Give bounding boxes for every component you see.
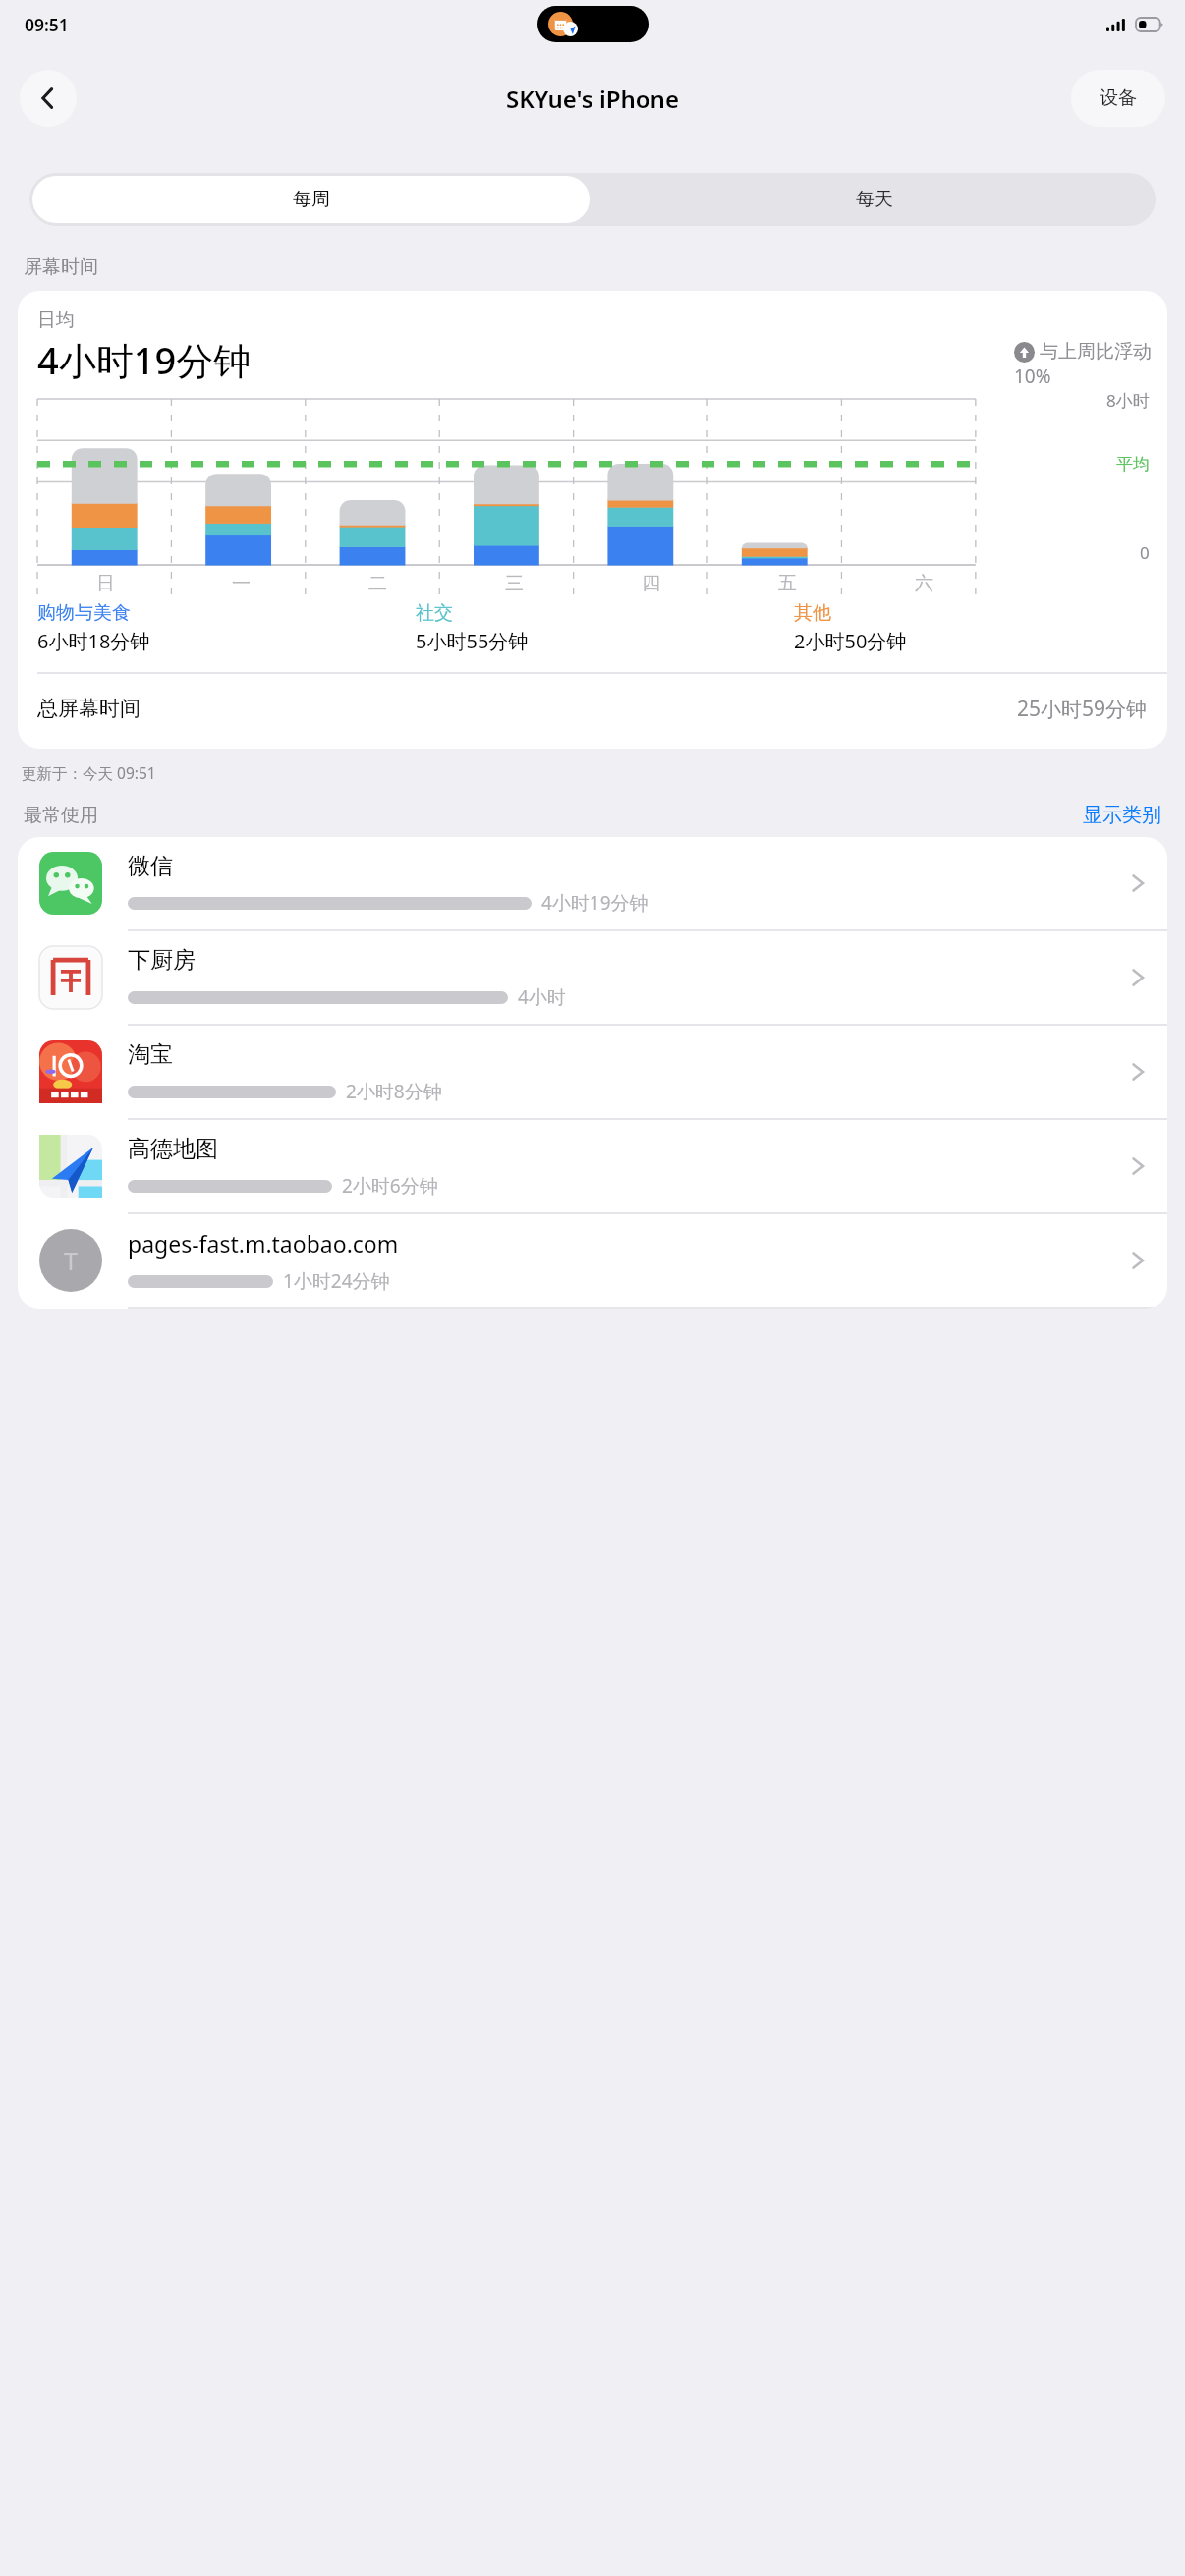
staticText: 屏幕时间: [24, 255, 98, 279]
staticText: 淘宝: [128, 1040, 173, 1069]
staticText: 每天: [856, 188, 893, 211]
staticText: 2小时50分钟: [794, 628, 907, 654]
staticText: 四: [642, 572, 660, 595]
button[interactable]: 每天: [592, 173, 1156, 226]
staticText: 4小时: [518, 984, 566, 1010]
staticText: 与上周比浮动: [1040, 340, 1152, 364]
staticText: 设备: [1100, 86, 1137, 110]
staticText: pages-fast.m.taobao.com: [128, 1228, 399, 1259]
staticText: 5小时55分钟: [416, 628, 529, 654]
other: Open 下厨房: [1128, 968, 1148, 987]
other: Open 淘宝: [1128, 1062, 1148, 1082]
staticText: 每周: [293, 188, 330, 211]
other: Open 微信: [1128, 873, 1148, 893]
button[interactable]: Back: [20, 70, 77, 127]
staticText: 总屏幕时间: [37, 696, 141, 721]
staticText: 日: [96, 572, 115, 595]
staticText: 显示类别: [1083, 803, 1161, 827]
other: Open 高德地图: [1128, 1156, 1148, 1176]
staticText: 4小时19分钟: [37, 334, 252, 385]
button[interactable]: 显示类别: [1083, 803, 1161, 827]
staticText: 09:51: [25, 13, 69, 36]
staticText: 8小时: [1106, 389, 1150, 412]
staticText: 更新于：今天 09:51: [22, 762, 156, 783]
staticText: 其他: [794, 601, 831, 625]
staticText: 二: [368, 572, 387, 595]
staticText: 高德地图: [128, 1135, 218, 1163]
staticText: 0: [1140, 541, 1150, 564]
staticText: 2小时8分钟: [346, 1079, 442, 1104]
button[interactable]: 高德地图: [18, 1120, 1167, 1212]
staticText: 4小时19分钟: [541, 890, 649, 916]
staticText: 微信: [128, 852, 173, 880]
button[interactable]: 设备: [1071, 70, 1165, 127]
staticText: SKYue's iPhone: [506, 83, 679, 115]
staticText: 平均: [1116, 454, 1150, 475]
staticText: 25小时59分钟: [1017, 695, 1148, 723]
button[interactable]: 下厨房: [18, 931, 1167, 1024]
staticText: 10%: [1014, 364, 1051, 389]
staticText: 2小时6分钟: [342, 1173, 438, 1199]
staticText: 三: [505, 572, 524, 595]
staticText: 社交: [416, 601, 453, 625]
staticText: 下厨房: [128, 946, 196, 975]
staticText: 六: [915, 572, 933, 595]
staticText: 最常使用: [24, 804, 98, 827]
staticText: 一: [232, 572, 251, 595]
staticText: 五: [778, 572, 797, 595]
other: Open pages-fast.m.taobao.com: [1128, 1251, 1148, 1270]
button[interactable]: T: [18, 1214, 1167, 1307]
staticText: 日均: [37, 308, 75, 332]
staticText: T: [64, 1244, 78, 1277]
button[interactable]: 总屏幕时间: [18, 674, 1167, 743]
staticText: 1小时24分钟: [283, 1268, 390, 1294]
button[interactable]: 微信: [18, 837, 1167, 929]
staticText: 6小时18分钟: [37, 628, 150, 654]
staticText: 购物与美食: [37, 601, 131, 625]
button[interactable]: 淘宝: [18, 1026, 1167, 1118]
button[interactable]: 每周: [32, 176, 590, 223]
